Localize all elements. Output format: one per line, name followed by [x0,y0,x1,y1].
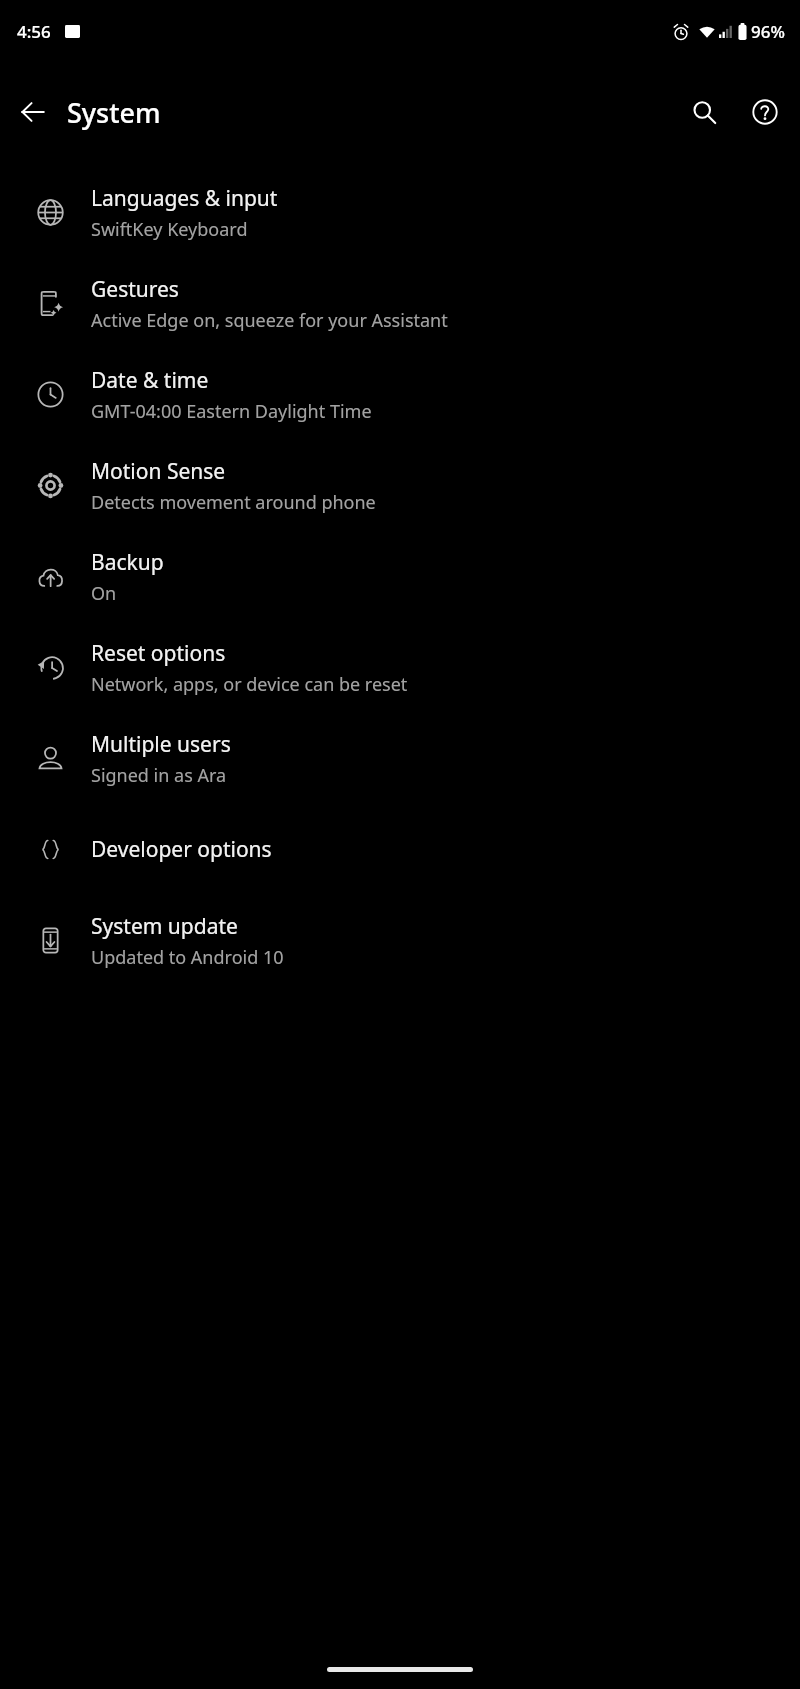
staticText: System update [91,912,238,941]
button[interactable]: Back [9,88,57,136]
staticText: On [91,581,117,606]
button[interactable]: Languages & input [0,167,800,258]
staticText: 96% [751,20,785,43]
staticText: GMT-04:00 Eastern Daylight Time [91,399,372,424]
staticText: Updated to Android 10 [91,945,284,970]
staticText: Developer options [91,835,272,864]
staticText: SwiftKey Keyboard [91,217,248,242]
button[interactable]: System update [0,895,800,986]
staticText: Date & time [91,366,209,395]
button[interactable]: Search [680,88,728,136]
button[interactable]: Motion Sense [0,440,800,531]
button[interactable]: Multiple users [0,713,800,804]
staticText: System [67,94,161,131]
staticText: Active Edge on, squeeze for your Assista… [91,308,448,333]
staticText: Network, apps, or device can be reset [91,672,408,697]
button[interactable]: Gestures [0,258,800,349]
staticText: Backup [91,548,164,577]
staticText: Detects movement around phone [91,490,376,515]
staticText: Reset options [91,639,226,668]
staticText: Multiple users [91,730,231,759]
staticText: Gestures [91,275,179,304]
button[interactable]: Help [741,88,789,136]
staticText: Motion Sense [91,457,226,486]
button[interactable]: Backup [0,531,800,622]
button[interactable]: Date & time [0,349,800,440]
staticText: 4:56 [17,20,51,43]
staticText: Languages & input [91,184,278,213]
button[interactable]: Reset options [0,622,800,713]
staticText: Signed in as Ara [91,763,227,788]
button[interactable]: Developer options [0,804,800,895]
